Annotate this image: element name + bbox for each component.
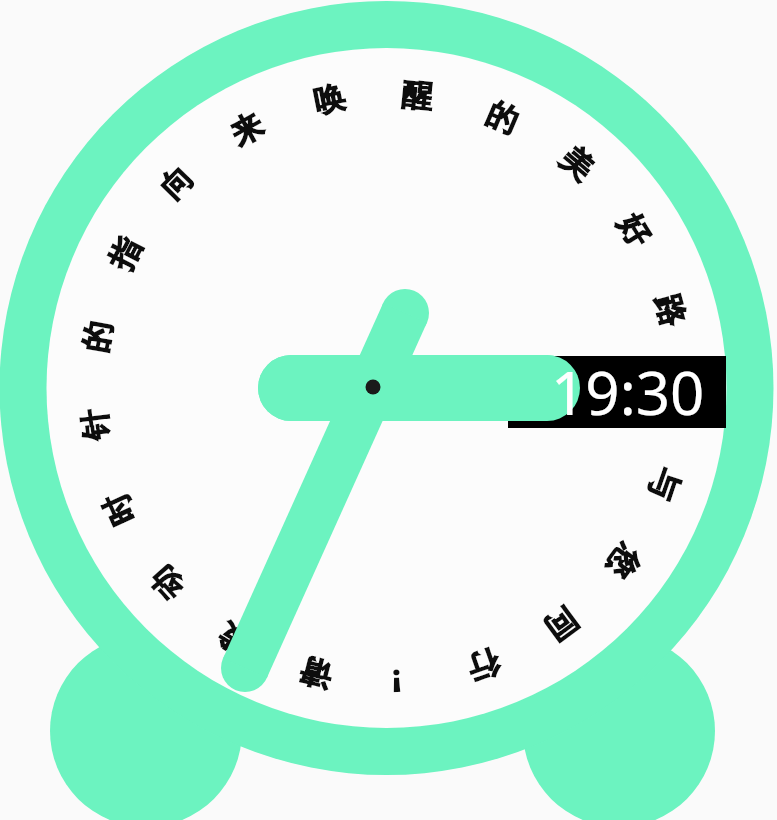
button[interactable]: Alarm clock, 19:30 bbox=[0, 0, 777, 820]
